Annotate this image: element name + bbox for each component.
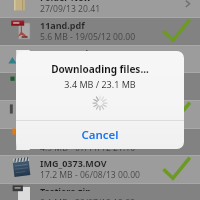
staticText: 1.2 MB - 03/04/13 11.20 (40, 59, 136, 71)
staticText: Foto 2013.jpg (40, 47, 100, 59)
staticText: 11and.pdf (40, 19, 85, 31)
staticText: 12 KB - 22/01/13 18.44 (40, 114, 131, 126)
staticText: 220 KB - 14/02/13 09.05 (40, 86, 136, 98)
button[interactable]: Folder New (0, 0, 200, 17)
other: Open (160, 0, 192, 15)
staticText: Cancel (81, 127, 119, 143)
button[interactable]: Cancel (16, 121, 184, 149)
other: Selected (160, 157, 192, 181)
button[interactable]: Foto 2013.jpg (0, 45, 200, 72)
staticText: IMG_0373.MOV (40, 157, 107, 169)
staticText: 8.1 MB - 30/07/13 13.02 (40, 197, 136, 200)
button[interactable]: Appunti.txt (0, 100, 200, 128)
other: Selected (160, 19, 192, 43)
staticText: 27/09/13 20.41 (40, 3, 101, 15)
other: Selected (160, 102, 192, 126)
button[interactable]: Musica.mp3 (0, 128, 200, 155)
staticText: 3.4 MB / 23.1 MB (16, 78, 184, 90)
staticText: Downloading files... (16, 62, 184, 76)
staticText: 4.9 MB - 07/11/12 21.10 (40, 142, 136, 154)
staticText: 17.2 MB - 06/08/13 00.00 (40, 169, 140, 181)
staticText: 5.6 MB - 19/05/12 00.00 (40, 31, 136, 43)
button[interactable]: 11and.pdf (0, 17, 200, 45)
staticText: Tastiera.zip (40, 185, 91, 191)
staticText: Musica.mp3 (40, 130, 94, 142)
button[interactable]: IMG_0373.MOV (0, 155, 200, 183)
staticText: Conti.numbers (40, 74, 107, 86)
button[interactable]: Conti.numbers (0, 72, 200, 100)
staticText: Folder New (40, 0, 91, 3)
button[interactable]: Tastiera.zip (0, 183, 200, 189)
